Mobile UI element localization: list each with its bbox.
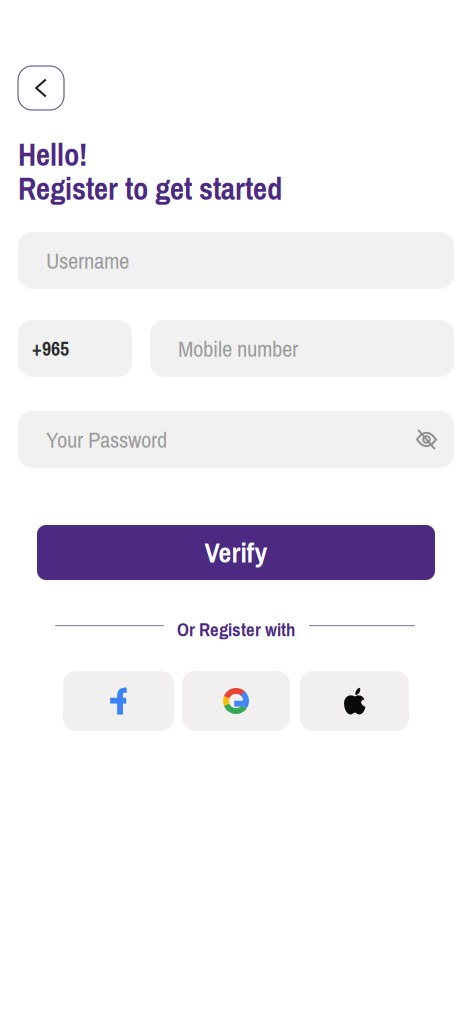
button[interactable]: Verify: [37, 525, 435, 580]
staticText: Hello!: [18, 134, 87, 175]
staticText: Mobile number: [178, 333, 298, 364]
staticText: Or Register with: [177, 617, 295, 642]
button[interactable]: Register with Facebook: [63, 671, 174, 731]
button[interactable]: Register with Apple: [300, 671, 409, 731]
button[interactable]: Back: [18, 66, 64, 110]
staticText: +965: [32, 335, 69, 362]
staticText: Your Password: [46, 424, 167, 455]
button[interactable]: Show password: [416, 432, 437, 447]
button[interactable]: Register with Google: [182, 671, 290, 731]
staticText: Username: [46, 245, 129, 276]
staticText: Verify: [204, 534, 267, 571]
staticText: Register to get started: [18, 168, 282, 209]
